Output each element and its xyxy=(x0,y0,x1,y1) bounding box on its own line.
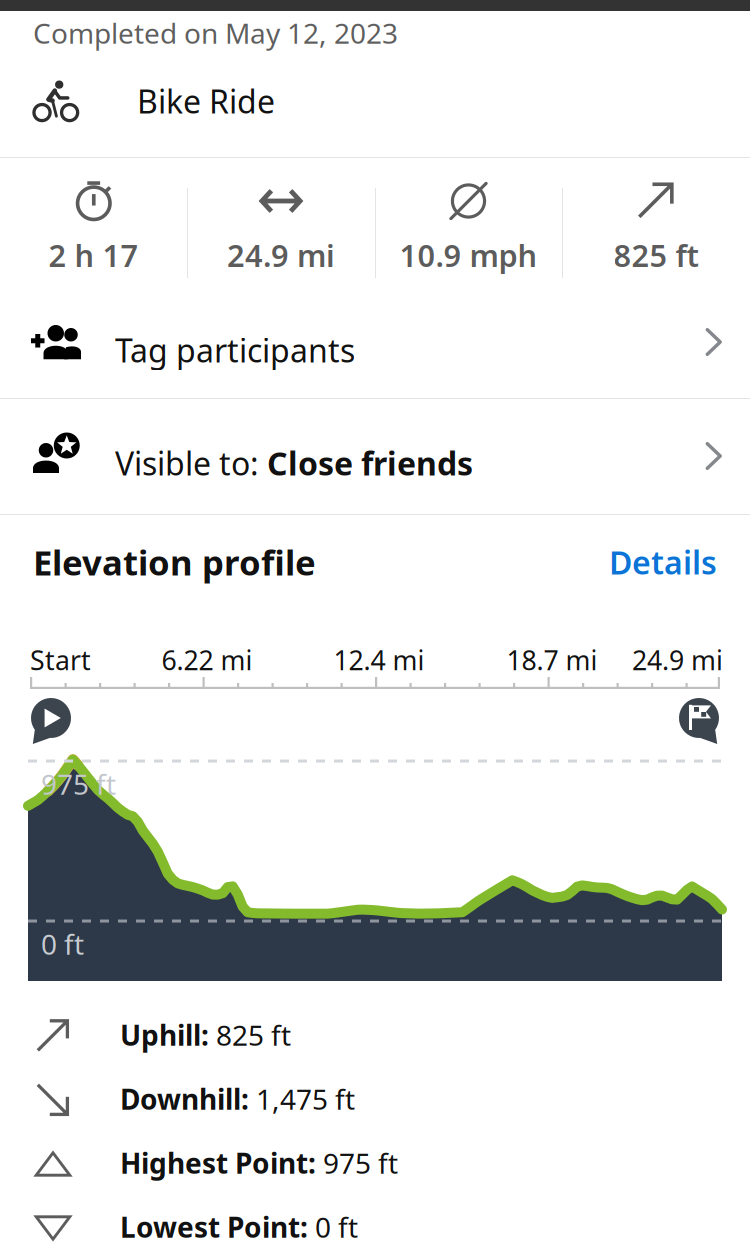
staticText: Uphill: xyxy=(120,1016,209,1054)
staticText: 975 ft xyxy=(41,765,116,803)
staticText: Lowest Point: xyxy=(120,1208,308,1246)
button[interactable]: Visible to: xyxy=(0,399,750,514)
staticText: Elevation profile xyxy=(33,539,316,585)
staticText: 10.9 mph xyxy=(399,235,537,275)
button[interactable]: Details xyxy=(557,538,717,586)
staticText: 0 ft xyxy=(308,1208,358,1246)
button[interactable]: Tag participants xyxy=(0,286,750,398)
staticText: Bike Ride xyxy=(137,80,275,122)
staticText: Completed on May 12, 2023 xyxy=(33,14,398,52)
staticText: 24.9 mi xyxy=(227,235,335,275)
staticText: 975 ft xyxy=(316,1144,398,1182)
staticText: 825 ft xyxy=(613,235,698,275)
staticText: Start xyxy=(30,642,91,678)
staticText: 2 h 17 xyxy=(48,235,138,275)
staticText: Highest Point: xyxy=(120,1144,316,1182)
staticText: Tag participants xyxy=(115,329,355,371)
staticText: 825 ft xyxy=(209,1016,291,1054)
staticText: 24.9 mi xyxy=(632,642,723,678)
staticText: 12.4 mi xyxy=(333,642,424,678)
staticText: 6.22 mi xyxy=(161,642,252,678)
staticText: Visible to: xyxy=(115,442,267,484)
staticText: Downhill: xyxy=(120,1080,249,1118)
staticText: Details xyxy=(609,541,717,583)
staticText: Close friends xyxy=(267,442,473,484)
staticText: 0 ft xyxy=(41,925,84,963)
staticText: 18.7 mi xyxy=(506,642,597,678)
staticText: 1,475 ft xyxy=(249,1080,355,1118)
